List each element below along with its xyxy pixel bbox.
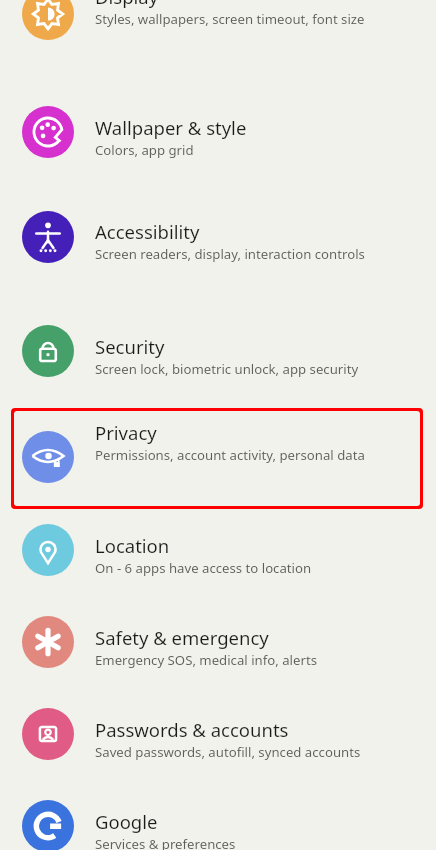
staticText: Accessibility: [95, 219, 200, 244]
button[interactable]: Passwords & accounts: [0, 696, 436, 788]
staticText: Wallpaper & style: [95, 115, 247, 140]
staticText: Emergency SOS, medical info, alerts: [95, 651, 317, 669]
staticText: Screen readers, display, interaction con…: [95, 245, 365, 263]
staticText: Screen lock, biometric unlock, app secur…: [95, 360, 359, 378]
button[interactable]: Wallpaper & style: [0, 95, 436, 201]
staticText: Permissions, account activity, personal …: [95, 446, 365, 464]
staticText: Display: [95, 0, 159, 9]
staticText: Location: [95, 533, 170, 558]
staticText: Services & preferences: [95, 835, 236, 850]
staticText: Passwords & accounts: [95, 717, 289, 742]
staticText: Google: [95, 809, 158, 834]
button[interactable]: Location: [0, 508, 436, 604]
staticText: Saved passwords, autofill, synced accoun…: [95, 743, 361, 761]
staticText: Security: [95, 334, 165, 359]
staticText: Privacy: [95, 420, 157, 445]
staticText: Styles, wallpapers, screen timeout, font…: [95, 10, 365, 28]
staticText: Safety & emergency: [95, 625, 269, 650]
button[interactable]: Display: [0, 0, 436, 95]
staticText: On - 6 apps have access to location: [95, 559, 312, 577]
button[interactable]: Google: [0, 788, 436, 850]
button[interactable]: Privacy: [14, 411, 420, 506]
staticText: Colors, app grid: [95, 141, 194, 159]
button[interactable]: Security: [0, 313, 436, 404]
button[interactable]: Safety & emergency: [0, 604, 436, 696]
button[interactable]: Accessibility: [0, 201, 436, 313]
